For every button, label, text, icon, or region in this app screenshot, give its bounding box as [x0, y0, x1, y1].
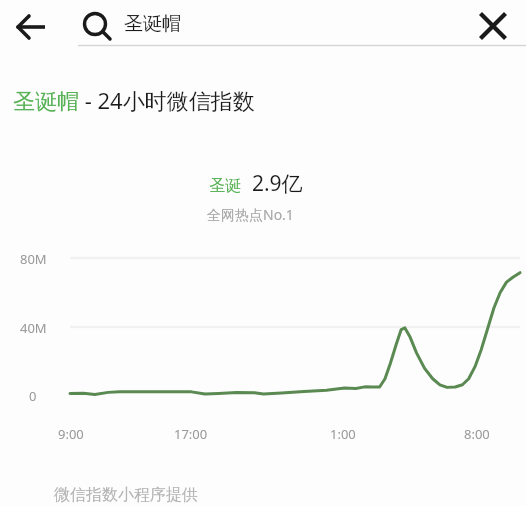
button[interactable]: Clear — [470, 5, 516, 47]
staticText: 全网热点No.1 — [207, 205, 294, 224]
button[interactable]: 圣诞帽 — [78, 4, 468, 48]
staticText: 80M — [20, 250, 47, 268]
staticText: 9:00 — [58, 425, 84, 443]
staticText: 圣诞帽 — [124, 12, 181, 36]
staticText: 0 — [29, 387, 37, 405]
staticText: 圣诞帽 - 24小时微信指数 — [13, 85, 255, 115]
staticText: 8:00 — [464, 425, 490, 443]
button[interactable]: Back — [6, 6, 58, 48]
staticText: 40M — [20, 319, 47, 337]
staticText: 圣诞 2.9亿 — [209, 169, 303, 198]
button[interactable]: 微信指数小程序提供 — [54, 485, 198, 505]
staticText: 17:00 — [174, 425, 208, 443]
staticText: 1:00 — [330, 425, 356, 443]
